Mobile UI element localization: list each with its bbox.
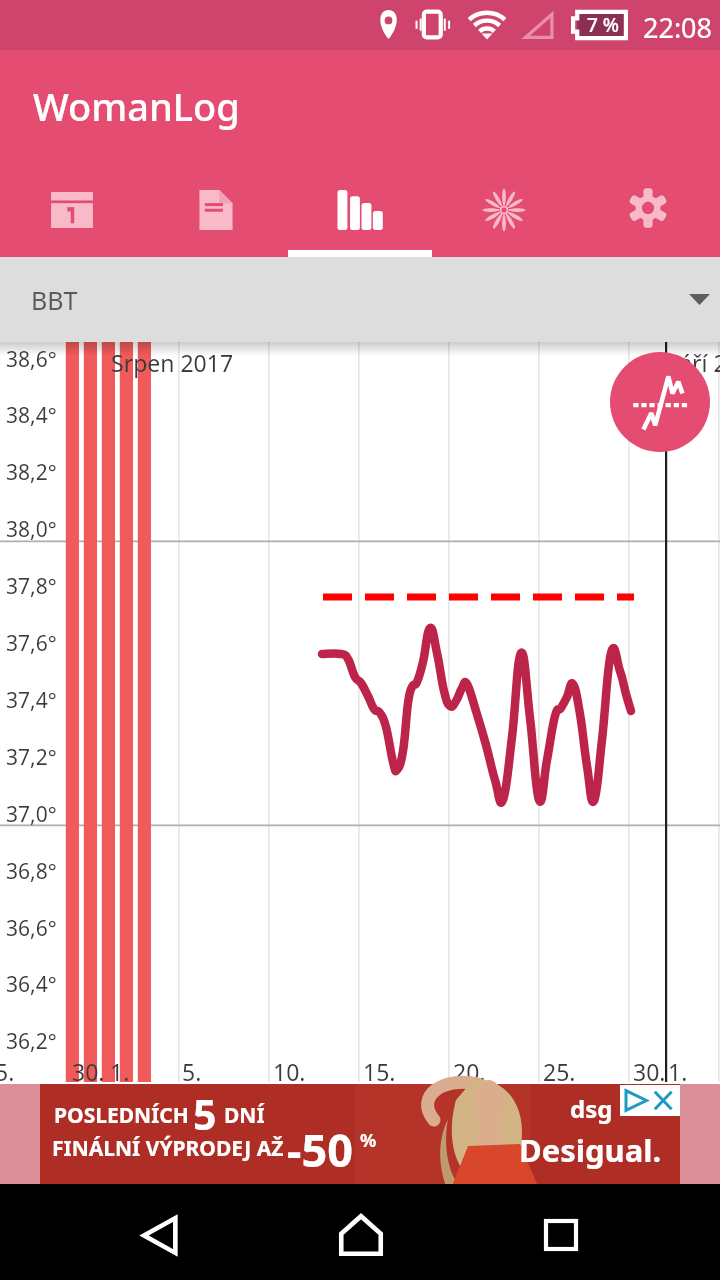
staticText: -50 bbox=[287, 1119, 353, 1180]
staticText: 36,4° bbox=[6, 970, 57, 999]
staticText: 37,2° bbox=[6, 743, 57, 772]
button[interactable]: Cycle bbox=[432, 168, 576, 257]
staticText: 37,8° bbox=[6, 572, 57, 601]
staticText: 37,4° bbox=[6, 686, 57, 715]
staticText: 38,4° bbox=[6, 401, 57, 430]
button[interactable]: Recents bbox=[513, 1187, 609, 1280]
staticText: 1. bbox=[110, 1056, 130, 1087]
staticText: 5. bbox=[0, 1056, 15, 1087]
staticText: 15. bbox=[363, 1056, 396, 1087]
staticText: Září 2017 bbox=[666, 347, 720, 378]
staticText: 10. bbox=[273, 1056, 306, 1087]
staticText: 36,2° bbox=[6, 1027, 57, 1056]
staticText: 25. bbox=[543, 1056, 576, 1087]
staticText: % bbox=[360, 1128, 377, 1153]
staticText: 1. bbox=[668, 1056, 688, 1087]
staticText: 5 bbox=[193, 1086, 217, 1142]
button[interactable]: Calendar bbox=[0, 168, 144, 257]
staticText: FINÁLNÍ VÝPRODEJ AŽ bbox=[52, 1134, 284, 1163]
button[interactable]: Advertisement bbox=[0, 1084, 720, 1184]
button[interactable]: BBT bbox=[0, 257, 720, 342]
button[interactable]: Settings bbox=[576, 168, 720, 257]
staticText: 30. bbox=[633, 1056, 666, 1087]
button[interactable]: Add measurement bbox=[610, 352, 710, 452]
staticText: 30. bbox=[72, 1056, 105, 1087]
staticText: WomanLog bbox=[33, 80, 240, 132]
staticText: 36,6° bbox=[6, 914, 57, 943]
staticText: 7 % bbox=[587, 12, 619, 38]
staticText: 22:08 bbox=[643, 9, 713, 46]
staticText: 36,8° bbox=[6, 857, 57, 886]
staticText: Desigual. bbox=[519, 1129, 662, 1171]
button[interactable]: Back bbox=[111, 1187, 207, 1280]
staticText: 20. bbox=[453, 1056, 486, 1087]
button[interactable]: Charts bbox=[288, 168, 432, 257]
button[interactable]: Home bbox=[313, 1187, 409, 1280]
staticText: 38,0° bbox=[6, 515, 57, 544]
staticText: 38,6° bbox=[6, 345, 57, 374]
button[interactable]: Notes bbox=[144, 168, 288, 257]
button[interactable]: Close ad bbox=[620, 1085, 680, 1116]
staticText: 5. bbox=[182, 1056, 202, 1087]
staticText: 37,0° bbox=[6, 800, 57, 829]
staticText: POSLEDNÍCH bbox=[54, 1101, 189, 1130]
staticText: 38,2° bbox=[6, 458, 57, 487]
staticText: DNÍ bbox=[224, 1101, 265, 1130]
staticText: 37,6° bbox=[6, 629, 57, 658]
staticText: BBT bbox=[31, 283, 78, 317]
staticText: Srpen 2017 bbox=[111, 347, 234, 378]
staticText: dsg bbox=[570, 1092, 613, 1125]
